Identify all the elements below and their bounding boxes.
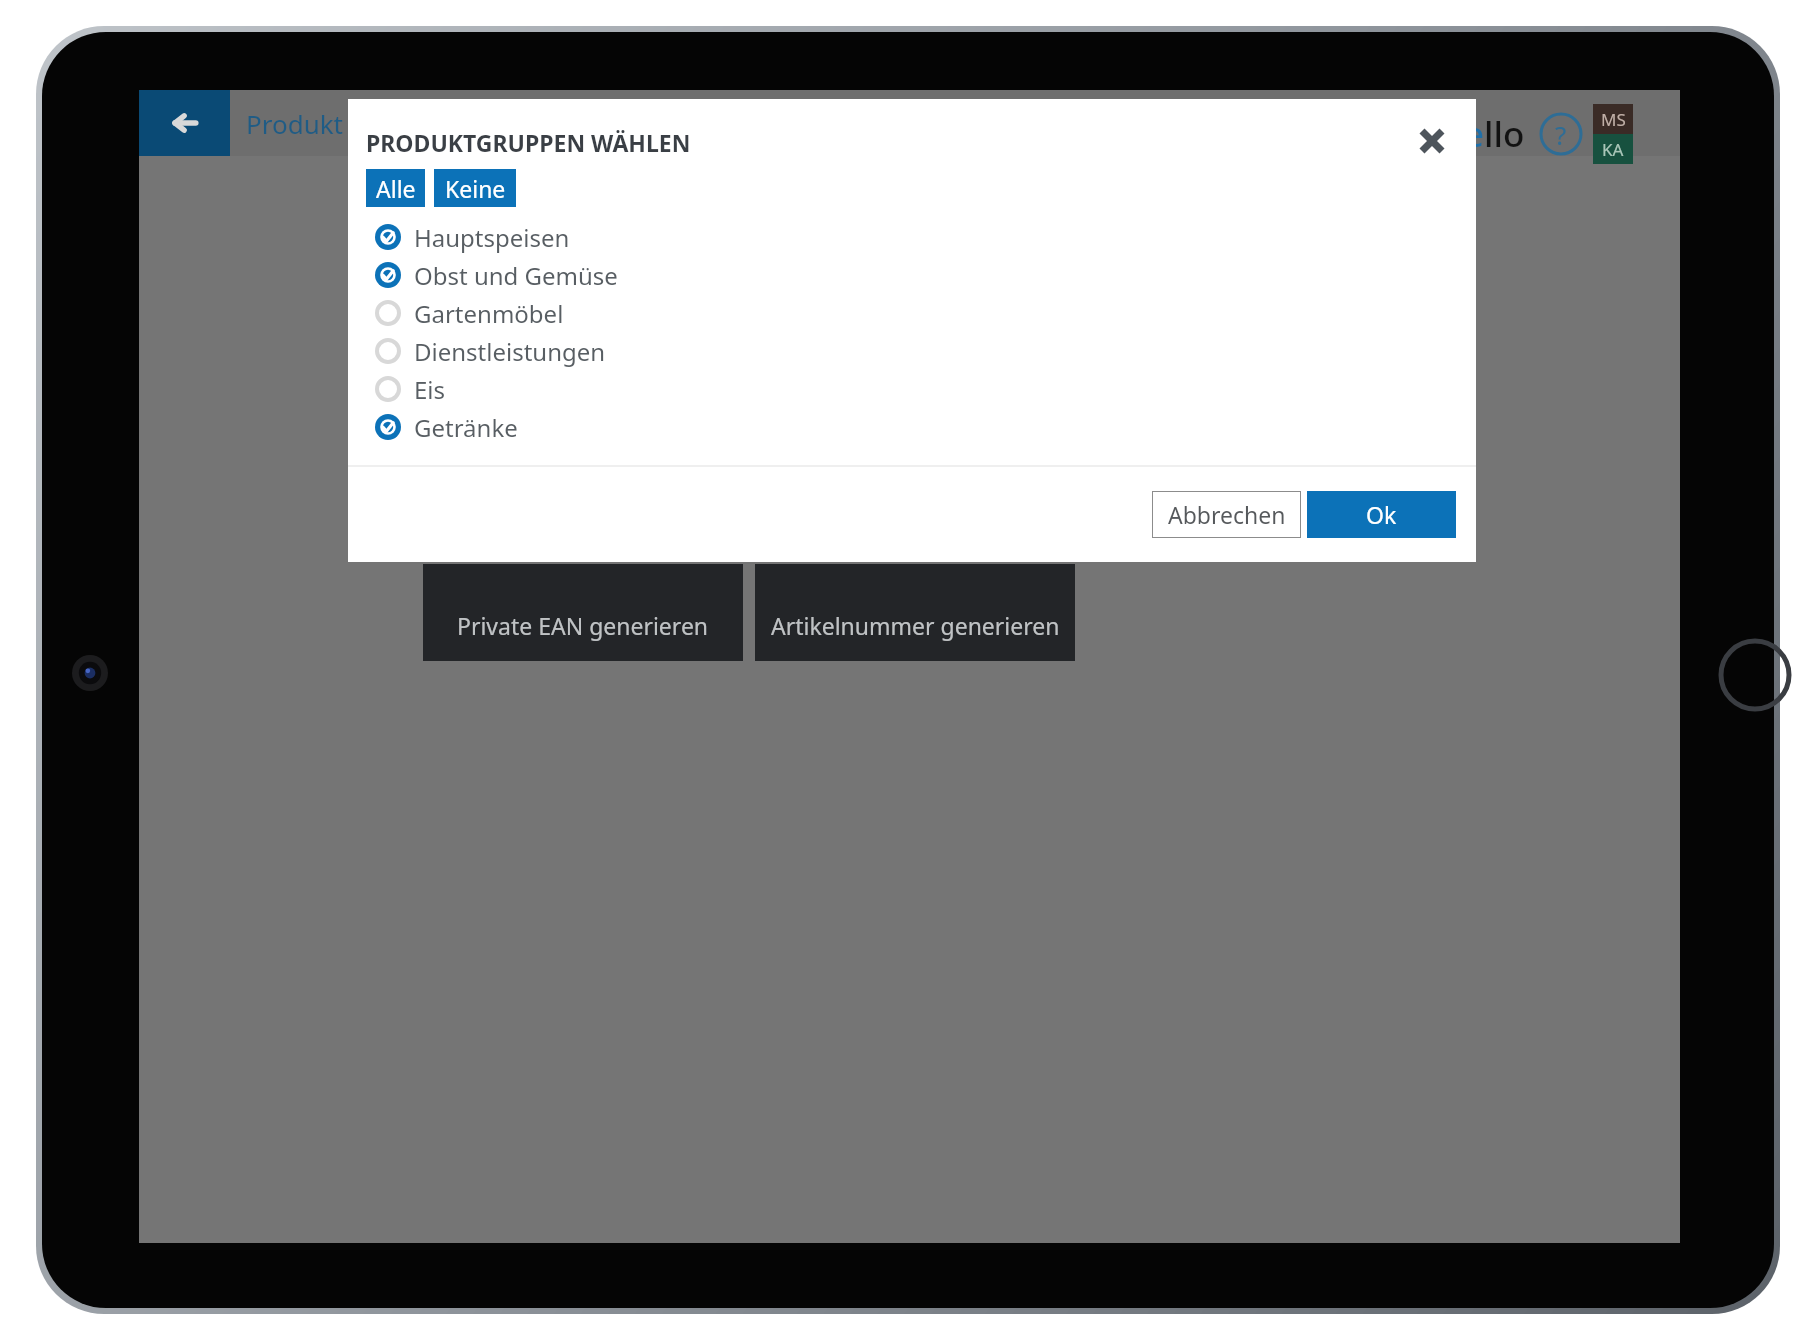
staticText: Ok [1366, 499, 1397, 530]
staticText: Gartenmöbel [414, 297, 564, 330]
staticText: Produkt Tools [246, 106, 414, 141]
button[interactable]: Hilfe [1539, 112, 1583, 156]
button[interactable]: Gartenmöbel [375, 294, 1503, 332]
button[interactable]: MS [1593, 104, 1633, 134]
staticText: Hauptspeisen [414, 221, 570, 254]
staticText: ? [1555, 117, 1567, 152]
button[interactable]: Eis [375, 370, 1503, 408]
button[interactable]: Schließen [1404, 113, 1460, 169]
staticText: KA [1602, 138, 1624, 161]
staticText: Dienstleistungen [414, 335, 606, 368]
button[interactable]: Alle [366, 169, 425, 207]
button[interactable]: Getränke [375, 408, 1503, 446]
button[interactable]: KA [1593, 134, 1633, 164]
staticText: PRODUKTGRUPPEN WÄHLEN [366, 127, 691, 158]
staticText: Keine [445, 173, 506, 204]
staticText: Getränke [414, 411, 518, 444]
staticText: MS [1601, 108, 1626, 131]
staticText: Obst und Gemüse [414, 259, 618, 292]
button[interactable]: Obst und Gemüse [375, 256, 1503, 294]
button[interactable]: Ok [1307, 491, 1456, 538]
staticText: Private EAN generieren [457, 610, 709, 641]
staticText: asello [1427, 110, 1525, 158]
button[interactable]: Abbrechen [1152, 491, 1301, 538]
staticText: Eis [414, 373, 446, 406]
button[interactable]: Keine [434, 169, 516, 207]
staticText: Abbrechen [1168, 499, 1286, 530]
button[interactable]: Hauptspeisen [375, 218, 1503, 256]
button[interactable]: Private EAN generieren [423, 564, 743, 661]
staticText: Artikelnummer generieren [771, 610, 1060, 641]
button[interactable]: Artikelnummer generieren [755, 564, 1075, 661]
button[interactable]: Dienstleistungen [375, 332, 1503, 370]
staticText: Alle [376, 173, 416, 204]
button[interactable]: Zurück [139, 90, 230, 156]
